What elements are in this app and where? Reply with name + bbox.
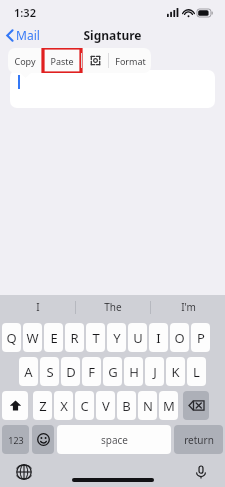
staticText: The <box>104 300 122 314</box>
button[interactable]: X <box>54 391 73 420</box>
button[interactable]: Format <box>109 48 151 73</box>
staticText: T <box>92 329 100 347</box>
staticText: O <box>174 329 185 347</box>
staticText: Format <box>115 55 146 67</box>
staticText: B <box>122 397 131 415</box>
staticText: E <box>50 329 58 347</box>
staticText: N <box>143 397 153 415</box>
button[interactable]: O <box>170 323 189 352</box>
button[interactable]: Copy <box>8 48 42 73</box>
button[interactable]: Backspace <box>183 391 209 420</box>
staticText: G <box>108 363 118 381</box>
button[interactable]: D <box>61 357 80 386</box>
staticText: V <box>102 397 110 415</box>
button[interactable]: Dictate <box>189 460 213 484</box>
staticText: Mail <box>16 27 40 43</box>
button[interactable]: F <box>82 357 101 386</box>
staticText: Copy <box>14 55 36 67</box>
button[interactable]: Y <box>107 323 126 352</box>
button[interactable]: T <box>86 323 105 352</box>
button[interactable]: Mail <box>0 25 46 45</box>
button[interactable]: P <box>191 323 210 352</box>
staticText: I <box>36 300 40 314</box>
staticText: Paste <box>50 55 74 67</box>
staticText: Z <box>39 397 47 415</box>
button[interactable]: M <box>159 391 178 420</box>
button[interactable]: Z <box>33 391 52 420</box>
button[interactable]: S <box>40 357 59 386</box>
staticText: Y <box>113 329 121 347</box>
button[interactable]: Paste <box>43 48 81 73</box>
button[interactable]: I <box>0 295 75 319</box>
staticText: C <box>80 397 89 415</box>
button[interactable]: 123 <box>2 425 29 454</box>
staticText: F <box>88 363 95 381</box>
staticText: Signature <box>83 27 142 43</box>
button[interactable]: V <box>96 391 115 420</box>
staticText: 1:32 <box>14 5 36 20</box>
button[interactable]: J <box>145 357 164 386</box>
button[interactable]: Change keyboard language <box>12 460 36 484</box>
button[interactable]: return <box>174 425 223 454</box>
staticText: K <box>171 363 180 381</box>
staticText: R <box>70 329 79 347</box>
staticText: W <box>26 329 39 347</box>
button[interactable]: H <box>124 357 143 386</box>
staticText: return <box>184 433 214 447</box>
button[interactable]: E <box>44 323 63 352</box>
staticText: A <box>24 363 33 381</box>
button[interactable] <box>10 70 215 108</box>
staticText: I <box>156 329 161 347</box>
staticText: space <box>101 433 128 447</box>
staticText: U <box>133 329 143 347</box>
button[interactable]: Q <box>2 323 21 352</box>
staticText: D <box>66 363 76 381</box>
button[interactable]: Shift <box>2 391 28 420</box>
staticText: S <box>46 363 54 381</box>
staticText: Q <box>6 329 17 347</box>
button[interactable]: Emoji <box>32 425 54 454</box>
button[interactable]: L <box>187 357 206 386</box>
staticText: X <box>60 397 68 415</box>
button[interactable]: K <box>166 357 185 386</box>
button[interactable]: N <box>138 391 157 420</box>
button[interactable]: R <box>65 323 84 352</box>
staticText: H <box>129 363 139 381</box>
staticText: I'm <box>181 300 196 314</box>
button[interactable]: space <box>57 425 171 454</box>
staticText: P <box>197 329 205 347</box>
staticText: M <box>163 397 175 415</box>
button[interactable]: Scan text <box>82 48 108 73</box>
staticText: J <box>153 363 157 381</box>
button[interactable]: I <box>149 323 168 352</box>
button[interactable]: W <box>23 323 42 352</box>
staticText: L <box>193 363 200 381</box>
button[interactable]: A <box>19 357 38 386</box>
button[interactable]: C <box>75 391 94 420</box>
button[interactable]: G <box>103 357 122 386</box>
button[interactable]: The <box>76 295 150 319</box>
button[interactable]: I'm <box>151 295 225 319</box>
button[interactable]: B <box>117 391 136 420</box>
button[interactable]: U <box>128 323 147 352</box>
staticText: 123 <box>8 434 24 446</box>
